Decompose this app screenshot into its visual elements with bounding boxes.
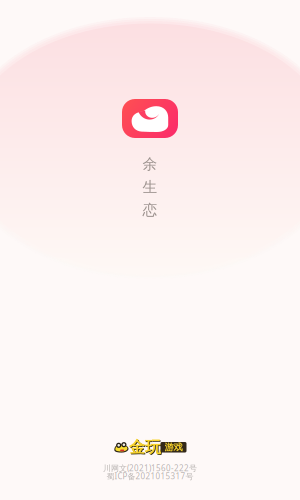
staticText: 金玩: [129, 437, 161, 457]
staticText: 金玩: [130, 438, 162, 458]
staticText: 川网文(2021)1560-222号: [103, 463, 197, 473]
staticText: 恋: [142, 201, 157, 219]
staticText: 游戏: [164, 441, 182, 453]
staticText: 生: [142, 178, 157, 196]
staticText: 蜀ICP备2021015317号: [106, 471, 193, 481]
staticText: 余: [142, 155, 157, 173]
